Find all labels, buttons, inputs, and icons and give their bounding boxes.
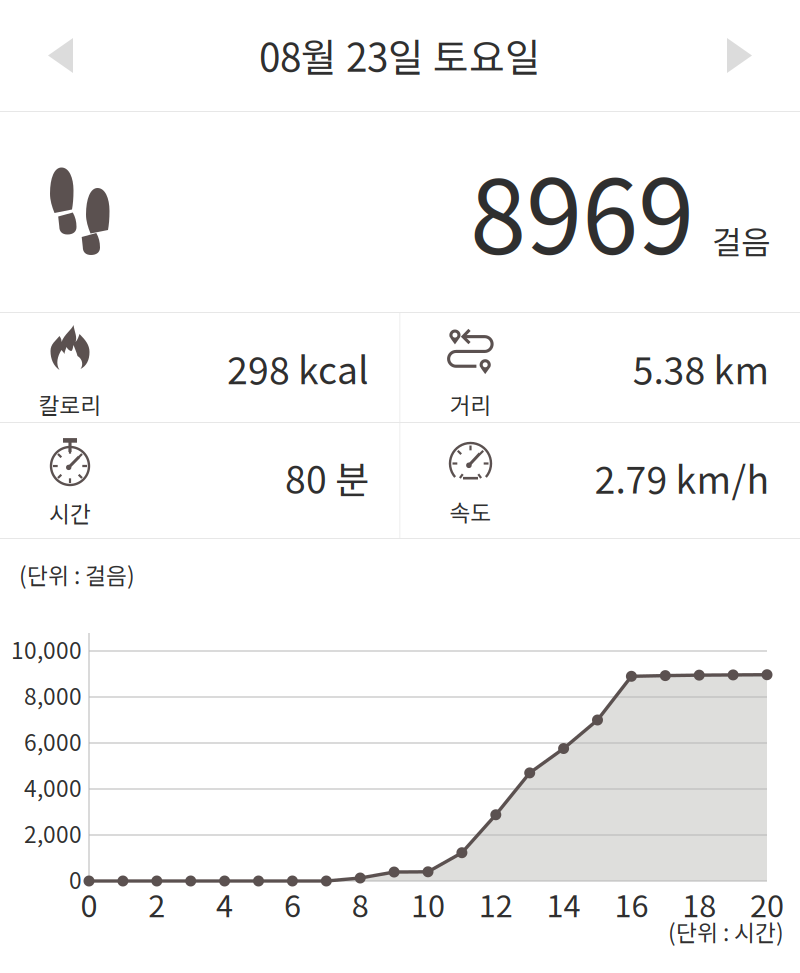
button[interactable]: Next day <box>705 7 800 104</box>
staticText: 0 <box>69 863 82 895</box>
button[interactable]: 속도 <box>400 423 800 538</box>
staticText: 80 분 <box>285 450 369 505</box>
staticText: 시간 <box>49 496 91 529</box>
staticText: 298 kcal <box>227 341 369 395</box>
staticText: 5.38 km <box>632 341 769 395</box>
staticText: 8 <box>352 882 369 926</box>
staticText: 16 <box>614 882 648 926</box>
staticText: (단위 : 걸음) <box>19 558 135 591</box>
staticText: 10 <box>411 882 445 926</box>
button[interactable]: 시간 <box>0 423 399 538</box>
button[interactable]: 거리 <box>400 313 800 422</box>
staticText: 4 <box>216 882 233 926</box>
staticText: 칼로리 <box>38 388 101 420</box>
staticText: (단위 : 시간) <box>668 915 784 948</box>
staticText: 08월 23일 토요일 <box>259 27 541 83</box>
staticText: 2,000 <box>24 817 82 849</box>
staticText: 18 <box>682 882 716 926</box>
staticText: 2 <box>148 882 165 926</box>
staticText: 속도 <box>449 495 491 528</box>
staticText: 8969 <box>470 137 694 283</box>
button[interactable]: 칼로리 <box>0 313 399 422</box>
staticText: 12 <box>479 882 513 926</box>
button[interactable]: Previous day <box>0 7 95 104</box>
staticText: 4,000 <box>24 771 82 803</box>
staticText: 0 <box>80 882 97 926</box>
staticText: 14 <box>547 882 581 926</box>
staticText: 20 <box>750 882 784 926</box>
staticText: 걸음 <box>712 217 770 263</box>
staticText: 2.79 km/h <box>594 450 769 505</box>
staticText: 8,000 <box>24 679 82 711</box>
staticText: 6 <box>284 882 301 926</box>
staticText: 10,000 <box>11 633 82 665</box>
staticText: 거리 <box>449 388 491 420</box>
staticText: 6,000 <box>24 725 82 757</box>
